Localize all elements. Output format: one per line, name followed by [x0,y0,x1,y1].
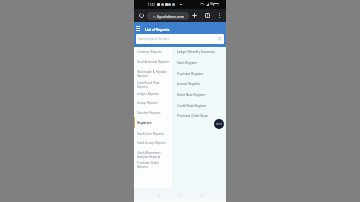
button[interactable]: Reload page [137,11,145,19]
button[interactable]: Home [176,191,184,199]
staticText: rs [153,15,156,19]
button[interactable]: Stock Movement Analysis Reports [134,149,172,160]
button[interactable]: Purchase Order Book [177,111,210,120]
staticText: tlysolutions.com [157,14,184,19]
button[interactable]: Common Reports [134,47,172,56]
button[interactable]: Purchase Order Reports [134,159,172,170]
button[interactable]: Search report list here [136,34,224,44]
button[interactable]: Stock Group Reports [134,138,172,147]
button[interactable]: Credit Note Register [177,101,209,110]
staticText: Credit Note Register [177,104,207,108]
staticText: Sales Register [177,61,198,65]
staticText: 56 [210,2,214,6]
button[interactable]: rs [147,12,189,20]
staticText: 11:21 [148,3,155,7]
button[interactable]: Final Accounts Reports [134,57,172,66]
button[interactable]: Group Reports [134,98,172,107]
staticText: Purchase Register [177,72,204,76]
button[interactable]: Receivable & Payable Reports [134,68,172,79]
button[interactable]: Sales Register [177,58,200,67]
button[interactable]: Purchase Register [177,69,206,78]
staticText: Purchase Order Book [177,114,208,118]
staticText: Ledger Monthly Summary [177,50,215,54]
staticText: Journal Register [177,82,201,86]
button[interactable]: Voucher Reports [134,108,172,117]
button[interactable]: Stock Item Reports [134,129,172,138]
staticText: Purchase Order Reports [137,161,160,169]
button[interactable]: Ledger Monthly Summary [177,47,217,56]
staticText: Search report list here [138,37,170,41]
staticText: Stock Group Reports [137,141,167,145]
button[interactable]: Back [198,191,206,199]
button[interactable]: Open navigation menu [133,24,142,33]
staticText: Final Accounts Reports [137,60,170,64]
staticText: Ledger Reports [137,92,159,96]
staticText: abcd [216,122,222,126]
staticText: Voucher Reports [137,111,161,115]
staticText: Stock Movement Analysis Reports [137,151,161,159]
staticText: Stock Item Reports [137,132,164,136]
button[interactable]: Cash/Fund Flow Reports [134,79,172,90]
button[interactable]: Ledger Reports [134,89,172,98]
staticText: Common Reports [137,50,162,54]
staticText: Receivable & Payable Reports [137,70,167,78]
button[interactable]: Switch tabs [203,11,211,19]
button[interactable]: Chat support [214,119,224,129]
staticText: Cash/Fund Flow Reports [137,81,160,89]
button[interactable]: Recent apps [154,191,162,199]
staticText: List of Reports [145,27,170,32]
staticText: Debit Note Register [177,93,206,97]
button[interactable]: More options [215,11,223,19]
button[interactable]: New tab [190,11,198,19]
staticText: Registers [137,121,152,125]
button[interactable]: List of Reports [145,27,170,32]
button[interactable]: Debit Note Register [177,90,208,99]
staticText: 1 [207,14,209,18]
button[interactable]: Journal Register [177,79,203,88]
button[interactable]: Registers [134,117,172,128]
staticText: Group Reports [137,101,158,105]
